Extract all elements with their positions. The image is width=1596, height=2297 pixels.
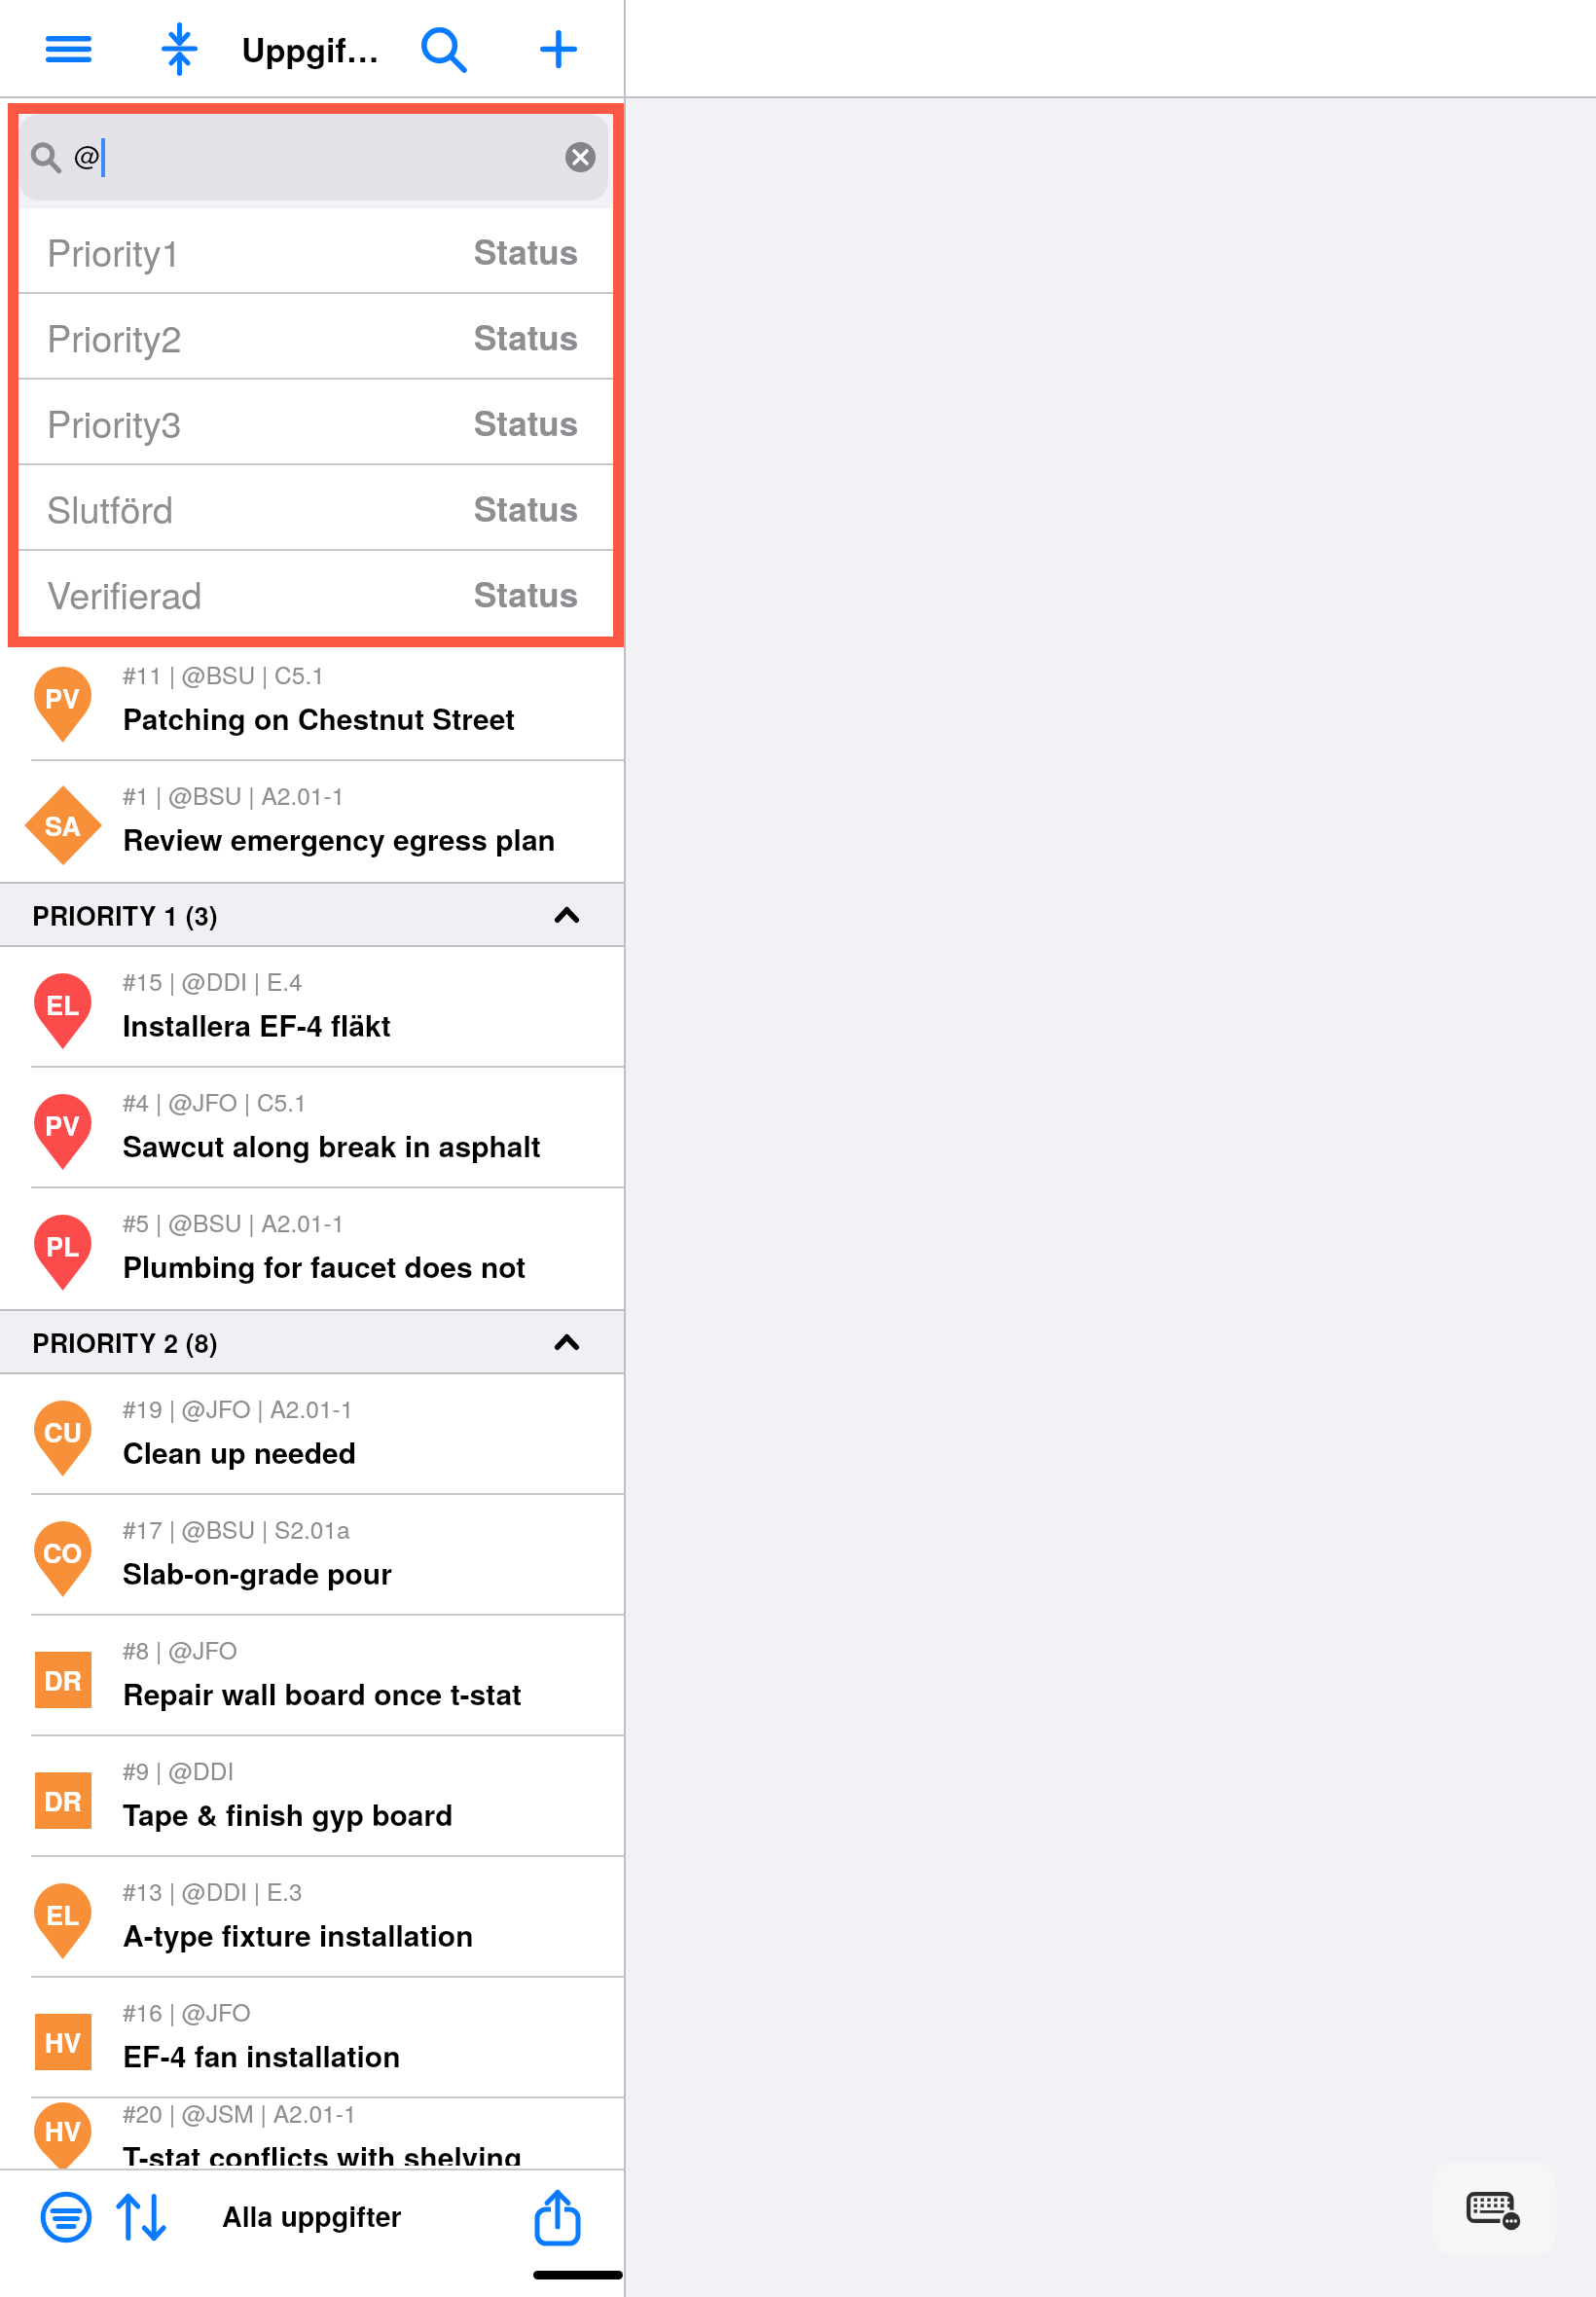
button[interactable]: Sort — [98, 2174, 184, 2260]
staticText: EF-4 fan installation — [123, 2034, 401, 2076]
staticText: PV — [45, 1107, 81, 1145]
staticText: CU — [44, 1413, 82, 1451]
staticText: Status — [474, 569, 579, 618]
staticText: HV — [45, 2112, 82, 2150]
button[interactable]: Alla uppgifter — [214, 2184, 409, 2239]
button[interactable]: HV — [0, 1978, 624, 2098]
button[interactable]: CO — [0, 1495, 624, 1616]
button[interactable]: Keyboard options — [1433, 2162, 1556, 2256]
staticText: Clean up needed — [123, 1431, 357, 1473]
button[interactable]: Share — [515, 2174, 600, 2260]
staticText: Status — [474, 484, 579, 532]
staticText: #9 | @DDI — [123, 1753, 235, 1787]
button[interactable]: Priority3 — [47, 380, 579, 465]
button[interactable]: DR — [0, 1616, 624, 1736]
button[interactable]: PV — [0, 1068, 624, 1188]
button[interactable]: CU — [0, 1374, 624, 1495]
staticText: Tape & finish gyp board — [123, 1793, 453, 1835]
button[interactable]: Clear — [565, 142, 596, 172]
staticText: #16 | @JFO — [123, 1994, 251, 2028]
staticText: Alla uppgifter — [222, 2196, 402, 2236]
staticText: Installera EF-4 fläkt — [123, 1003, 391, 1045]
button[interactable]: Slutförd — [47, 465, 579, 551]
button[interactable]: @ — [19, 114, 608, 201]
staticText: PL — [46, 1227, 80, 1265]
staticText: Status — [474, 398, 579, 447]
button[interactable]: EL — [0, 1857, 624, 1978]
button[interactable]: Verifierad — [47, 551, 579, 637]
staticText: DR — [44, 1661, 82, 1699]
staticText: #17 | @BSU | S2.01a — [123, 1512, 350, 1546]
staticText: Repair wall board once t-stat — [123, 1672, 523, 1714]
staticText: T-stat conflicts with shelving — [123, 2135, 523, 2166]
staticText: Priority2 — [47, 310, 182, 363]
staticText: #13 | @DDI | E.3 — [123, 1874, 303, 1908]
staticText: Patching on Chestnut Street — [123, 697, 516, 739]
staticText: #19 | @JFO | A2.01-1 — [123, 1391, 354, 1425]
button[interactable]: Priority1 — [47, 208, 579, 294]
staticText: Sawcut along break in asphalt — [123, 1124, 541, 1166]
button[interactable]: HV — [0, 2098, 624, 2169]
staticText: Priority1 — [47, 225, 182, 277]
button[interactable]: EL — [0, 947, 624, 1068]
staticText: Priority3 — [47, 396, 182, 449]
button[interactable]: Collapse — [134, 4, 224, 93]
button[interactable]: Search — [400, 4, 490, 93]
staticText: #20 | @JSM | A2.01-1 — [123, 2096, 357, 2130]
button[interactable]: PL — [0, 1188, 624, 1309]
staticText: #8 | @JFO — [123, 1632, 237, 1666]
staticText: #4 | @JFO | C5.1 — [123, 1084, 308, 1118]
staticText: EL — [46, 1896, 80, 1934]
button[interactable]: SA — [0, 761, 624, 882]
button[interactable]: DR — [0, 1736, 624, 1857]
staticText: A-type fixture installation — [123, 1914, 474, 1955]
button[interactable]: PRIORITY 2 (8) — [32, 1311, 579, 1372]
button[interactable]: PV — [0, 640, 624, 761]
staticText: #15 | @DDI | E.4 — [123, 964, 303, 998]
staticText: #1 | @BSU | A2.01-1 — [123, 778, 345, 812]
staticText: DR — [44, 1782, 82, 1820]
staticText: Status — [474, 312, 579, 361]
staticText: Slab-on-grade pour — [123, 1551, 392, 1593]
staticText: Review emergency egress plan — [123, 818, 556, 859]
staticText: Slutförd — [47, 482, 174, 534]
staticText: CO — [43, 1534, 83, 1572]
button[interactable]: Menu — [23, 4, 113, 93]
button[interactable]: Add — [514, 4, 603, 93]
button[interactable]: Priority2 — [47, 294, 579, 380]
staticText: PV — [45, 679, 81, 717]
staticText: #11 | @BSU | C5.1 — [123, 657, 325, 691]
staticText: Uppgif… — [241, 25, 380, 73]
staticText: SA — [45, 807, 81, 845]
staticText: EL — [46, 986, 80, 1024]
staticText: #5 | @BSU | A2.01-1 — [123, 1205, 345, 1239]
button[interactable]: PRIORITY 1 (3) — [32, 884, 579, 945]
staticText: Plumbing for faucet does not — [123, 1245, 526, 1287]
staticText: Status — [474, 227, 579, 275]
staticText: PRIORITY 1 (3) — [32, 896, 218, 933]
staticText: HV — [45, 2024, 82, 2061]
button[interactable]: Filter — [23, 2174, 109, 2260]
staticText: @ — [74, 135, 101, 173]
staticText: Verifierad — [47, 567, 202, 620]
staticText: PRIORITY 2 (8) — [32, 1324, 218, 1361]
